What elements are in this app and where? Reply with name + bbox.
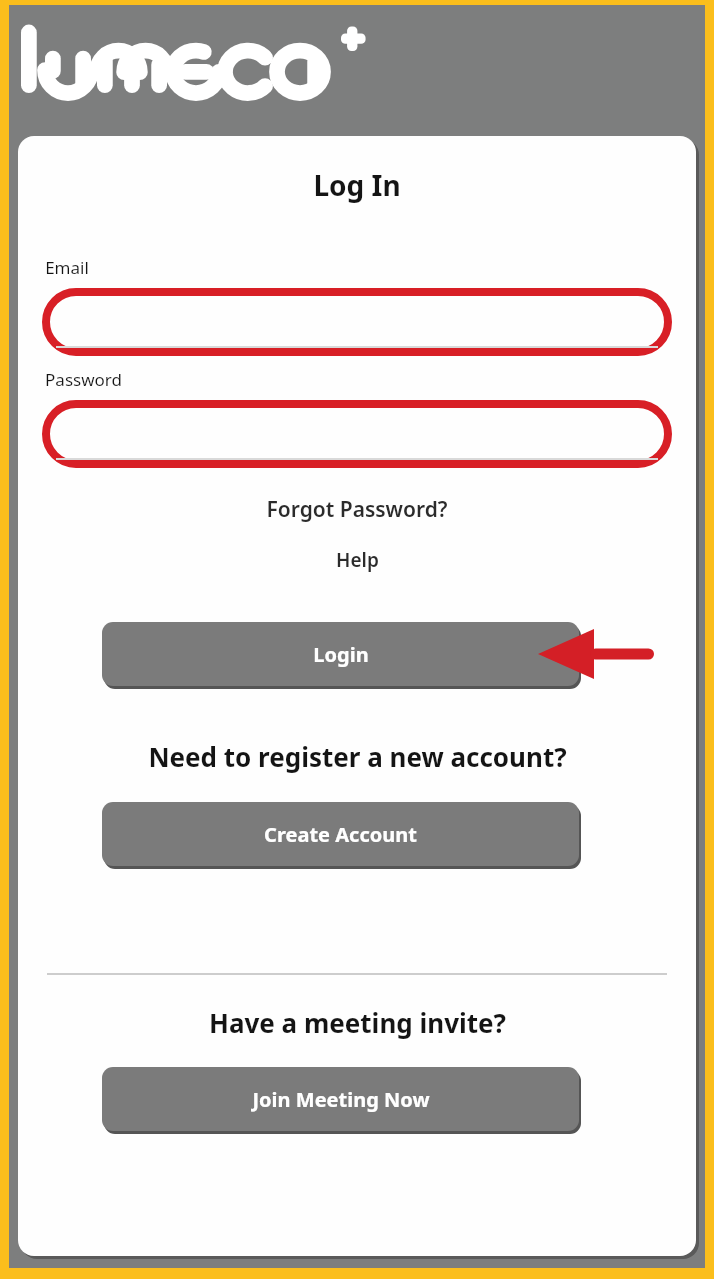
staticText: Forgot Password? xyxy=(266,495,448,524)
staticText: Login xyxy=(313,641,369,668)
button[interactable]: Help xyxy=(18,544,696,576)
button[interactable]: Join Meeting Now xyxy=(102,1067,579,1131)
button[interactable] xyxy=(42,288,672,356)
staticText: Need to register a new account? xyxy=(148,739,567,774)
button[interactable]: Login xyxy=(102,622,579,686)
button[interactable]: Create Account xyxy=(102,802,579,866)
staticText: Join Meeting Now xyxy=(252,1086,430,1113)
staticText: Password xyxy=(45,368,122,391)
staticText: Create Account xyxy=(264,821,417,848)
button[interactable]: Forgot Password? xyxy=(18,492,696,527)
staticText: Email xyxy=(45,256,89,279)
button[interactable] xyxy=(42,400,672,468)
staticText: Have a meeting invite? xyxy=(209,1005,506,1040)
staticText: Help xyxy=(336,547,379,573)
staticText: Log In xyxy=(313,166,401,204)
